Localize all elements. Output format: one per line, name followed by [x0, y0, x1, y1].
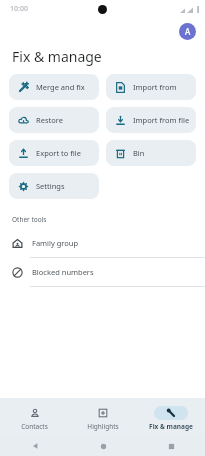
- button[interactable]: Blocked numbers: [0, 258, 205, 286]
- staticText: 10:00: [10, 4, 28, 14]
- staticText: Fix & manage: [149, 422, 193, 431]
- staticText: Family group: [32, 238, 79, 248]
- button[interactable]: Restore contacts: [9, 107, 99, 133]
- staticText: Import from SIM: [133, 82, 190, 92]
- button[interactable]: Import from file: [106, 107, 196, 133]
- other: Home: [100, 443, 107, 450]
- button[interactable]: Bin: [106, 140, 196, 166]
- staticText: Blocked numbers: [32, 267, 94, 277]
- button[interactable]: Fix & manage: [137, 403, 205, 431]
- staticText: Contacts: [21, 422, 48, 431]
- staticText: Merge and fix: [36, 82, 85, 92]
- button[interactable]: Family group: [0, 229, 205, 257]
- staticText: Other tools: [12, 215, 47, 224]
- staticText: A: [185, 26, 191, 37]
- staticText: Bin: [133, 148, 145, 158]
- staticText: Import from file: [133, 115, 190, 125]
- button[interactable]: Account: [179, 23, 196, 40]
- button[interactable]: Contacts: [0, 403, 69, 431]
- button[interactable]: Highlights: [69, 403, 137, 431]
- button[interactable]: Export to file: [9, 140, 99, 166]
- staticText: Highlights: [87, 422, 119, 431]
- staticText: Restore contacts: [36, 115, 93, 125]
- staticText: Settings: [36, 181, 65, 191]
- button[interactable]: Merge and fix: [9, 74, 99, 100]
- staticText: Export to file: [36, 148, 81, 158]
- button[interactable]: Import from SIM: [106, 74, 196, 100]
- other: Back: [31, 442, 39, 450]
- button[interactable]: Settings: [9, 173, 99, 199]
- other: Recents: [168, 443, 175, 450]
- staticText: Fix & manage: [12, 47, 102, 66]
